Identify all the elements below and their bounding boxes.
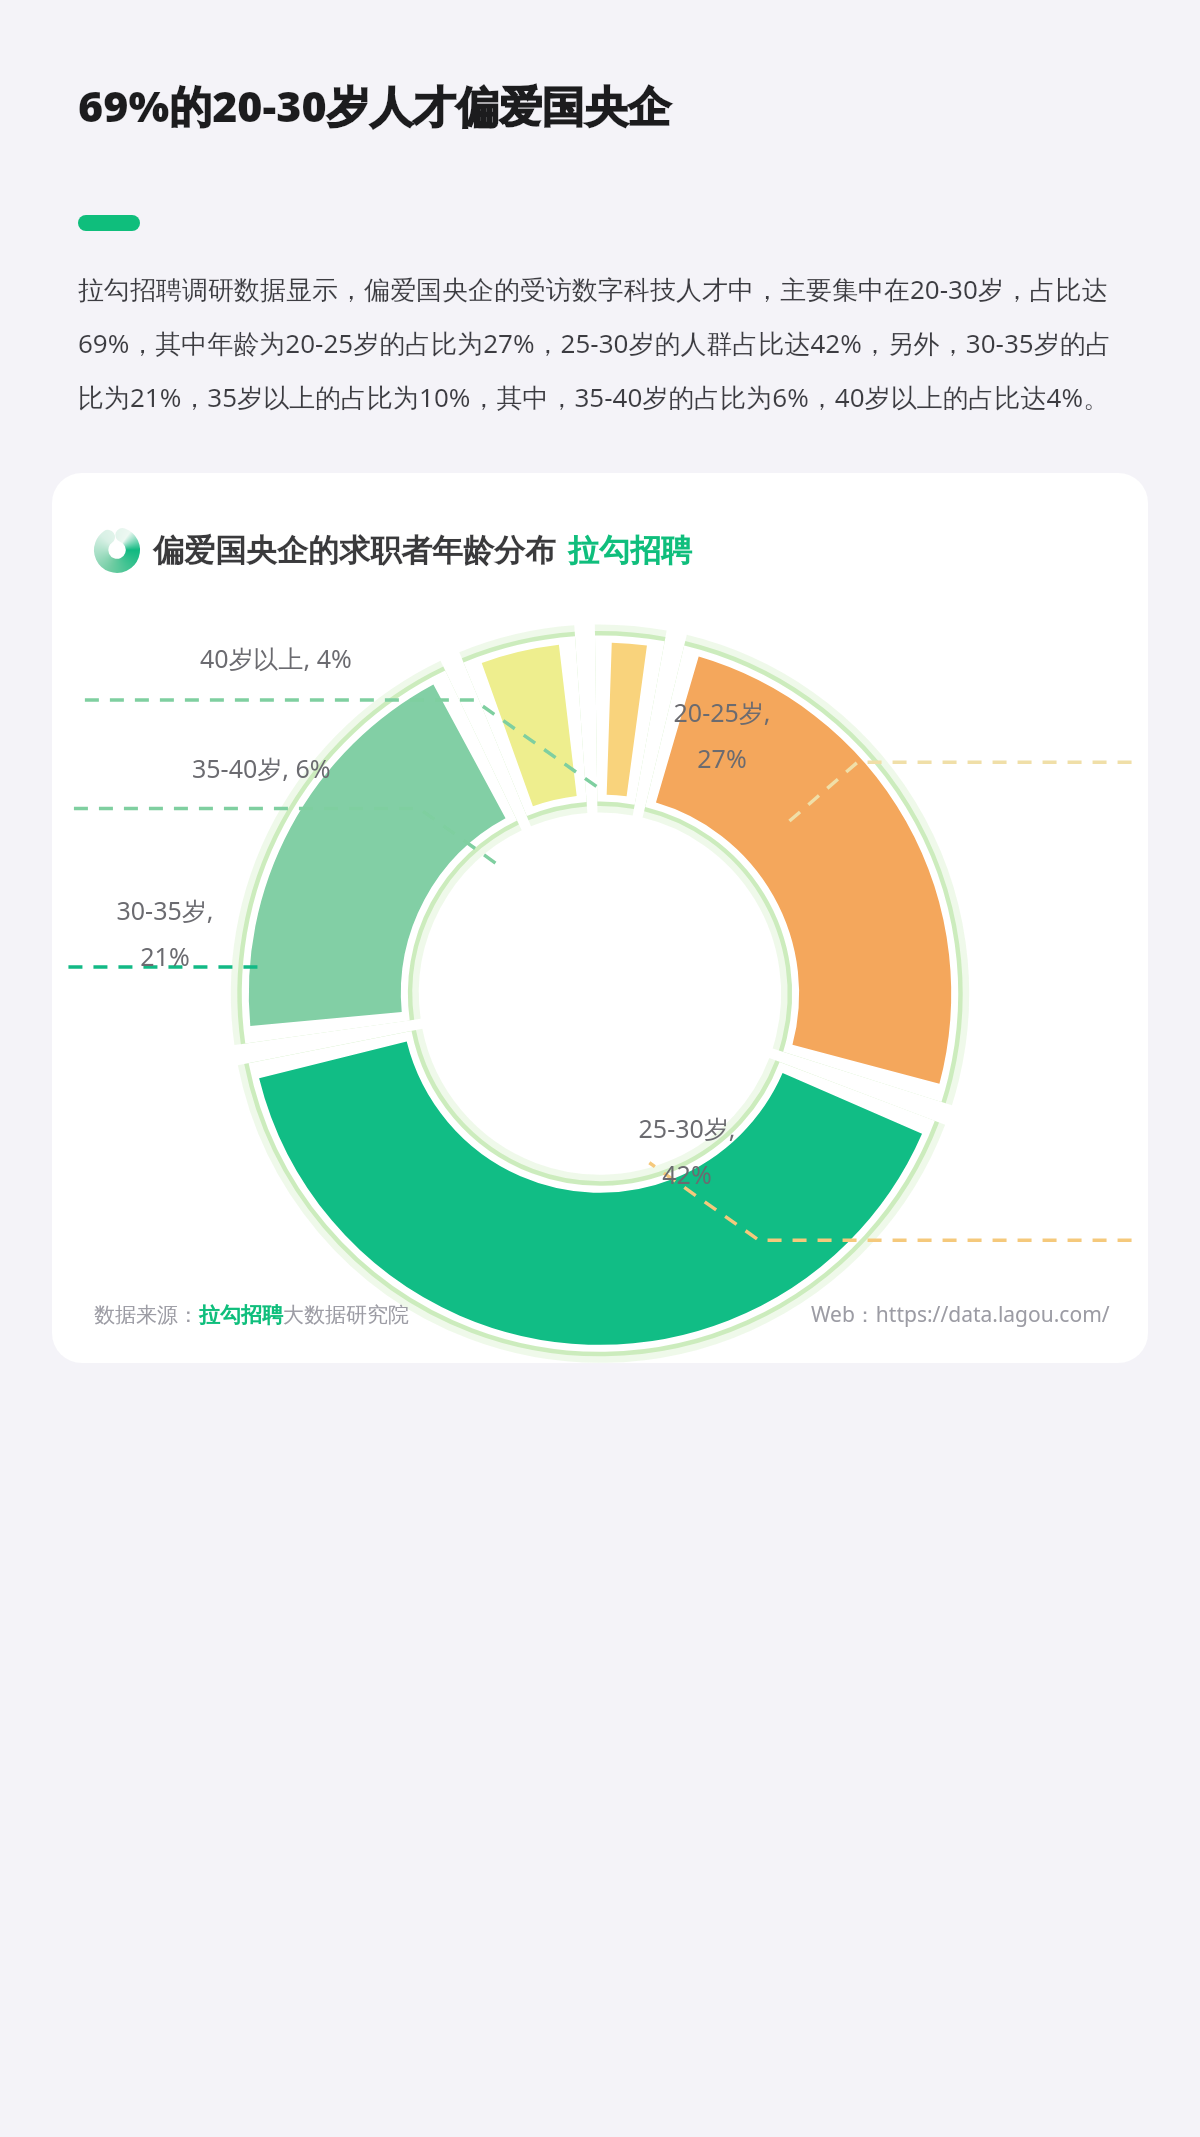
other: Lagou logo [94, 527, 140, 573]
staticText: 25-30岁, 42% [582, 1111, 792, 1191]
staticText: 35-40岁, 6% [192, 751, 331, 785]
staticText: Web：https://data.lagou.com/ [811, 1300, 1110, 1329]
staticText: 数据来源：拉勾招聘大数据研究院 [94, 1302, 409, 1328]
staticText: 偏爱国央企的求职者年龄分布 [153, 531, 556, 570]
staticText: 拉勾招聘 [568, 531, 692, 570]
staticText: 30-35岁, 21% [80, 893, 250, 973]
staticText: 69%的20-30岁人才偏爱国央企 [78, 76, 671, 135]
staticText: 拉勾招聘调研数据显示，偏爱国央企的受访数字科技人才中，主要集中在20-30岁，占… [78, 271, 1136, 415]
staticText: 40岁以上, 4% [200, 641, 352, 675]
button[interactable]: Lagou logo [52, 473, 1148, 1363]
staticText: 20-25岁, 27% [622, 695, 822, 775]
